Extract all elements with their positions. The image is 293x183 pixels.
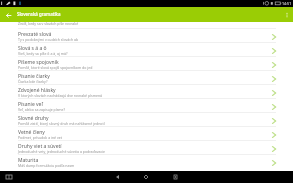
- staticText: Píšeme spojovník: [18, 59, 271, 66]
- button[interactable]: Vetné členy: [0, 127, 293, 141]
- button[interactable]: Recent apps: [4, 172, 14, 182]
- button[interactable]: Screenshot: [170, 172, 180, 182]
- staticText: Veľ, alebo sa zapisuje písme?: [18, 107, 271, 112]
- button[interactable]: Prevzaté slová: [0, 29, 293, 43]
- staticText: V ktorých slovách nachádzajú dve rovnaké…: [18, 93, 271, 98]
- button[interactable]: Píšeme spojovník: [0, 57, 293, 71]
- staticText: Podmet, prísudok a iné vet: [18, 135, 271, 140]
- button[interactable]: Maturita: [0, 155, 293, 169]
- staticText: Písanie čiarky: [18, 73, 271, 80]
- button[interactable]: Druhy viet a súvetí: [0, 141, 293, 155]
- staticText: Slová s ä a ô: [18, 45, 271, 52]
- staticText: Prevzaté slová: [18, 31, 271, 38]
- staticText: Pomôž zistiť, ktorý slovný druh má nahlá…: [18, 121, 271, 126]
- staticText: Jednoduché vety, jednoduché súvetia a po…: [18, 149, 271, 154]
- button[interactable]: Písanie čiarky: [0, 71, 293, 85]
- button[interactable]: Home: [141, 172, 151, 182]
- button[interactable]: Písanie veľ: [0, 99, 293, 113]
- staticText: Slovenská gramatika: [17, 11, 61, 17]
- staticText: Maturita: [18, 157, 271, 164]
- button[interactable]: Slovné druhy: [0, 113, 293, 127]
- button[interactable]: Slová s ä a ô: [0, 43, 293, 57]
- staticText: Máš dump formuláciu podľa nasm: [18, 163, 271, 168]
- staticText: Pomôž, ktoré slová spojíš spojovníkom do…: [18, 65, 271, 70]
- staticText: Čiarka kde čiarky?: [18, 79, 271, 84]
- staticText: Ty s podobnými v cudzích slovách ab: [18, 37, 271, 42]
- staticText: Druhy viet a súvetí: [18, 143, 271, 150]
- button[interactable]: Zdvojené hlásky: [0, 85, 293, 99]
- staticText: 14:51: [282, 1, 292, 6]
- staticText: Zdvojené hlásky: [18, 87, 271, 94]
- button[interactable]: More options: [281, 9, 293, 21]
- button[interactable]: Back: [2, 9, 14, 21]
- staticText: Vetné členy: [18, 129, 271, 136]
- staticText: Vieš, kedy sa píše ô a ä, aj mä?: [18, 51, 271, 56]
- staticText: Zistíš, kedy sa v slovách píše rovnaké: [18, 21, 271, 26]
- staticText: Slovné druhy: [18, 115, 271, 122]
- button[interactable]: Back: [112, 172, 122, 182]
- staticText: Písanie veľ: [18, 101, 271, 108]
